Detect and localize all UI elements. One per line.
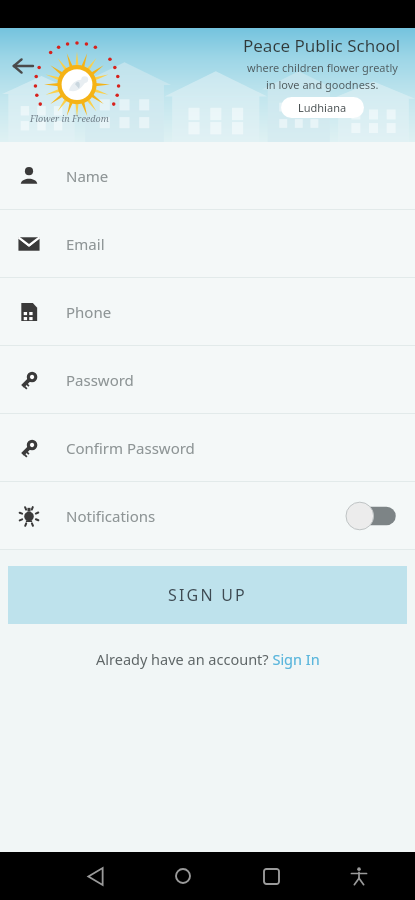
staticText: Peace Public School bbox=[243, 34, 401, 57]
staticText: Ludhiana bbox=[298, 100, 347, 115]
button[interactable]: Back bbox=[4, 48, 40, 84]
staticText: Notifications bbox=[66, 506, 156, 526]
button[interactable]: Recent apps bbox=[249, 854, 293, 898]
staticText: Confirm Password bbox=[66, 438, 195, 458]
staticText: Flower in Freedom bbox=[30, 112, 109, 124]
staticText: where children flower greatly bbox=[247, 60, 398, 75]
button[interactable]: Ludhiana bbox=[281, 97, 364, 118]
staticText: Phone bbox=[66, 302, 112, 322]
button[interactable]: Accessibility bbox=[337, 854, 381, 898]
staticText: SIGN UP bbox=[168, 584, 247, 606]
button[interactable]: Toggle notifications bbox=[345, 501, 399, 531]
button[interactable]: Home bbox=[161, 854, 205, 898]
staticText: Already have an account? Sign In bbox=[96, 649, 320, 669]
button[interactable]: Notifications bbox=[0, 482, 415, 550]
button[interactable]: Phone bbox=[0, 278, 415, 346]
staticText: in love and goodness. bbox=[266, 77, 379, 92]
button[interactable]: Confirm Password bbox=[0, 414, 415, 482]
staticText: Email bbox=[66, 234, 105, 254]
button[interactable]: Password bbox=[0, 346, 415, 414]
button[interactable]: Back bbox=[73, 854, 117, 898]
staticText: Name bbox=[66, 166, 109, 186]
button[interactable]: Name bbox=[0, 142, 415, 210]
button[interactable]: Email bbox=[0, 210, 415, 278]
staticText: Password bbox=[66, 370, 134, 390]
button[interactable]: Already have an account? Sign In bbox=[0, 642, 415, 676]
button[interactable]: SIGN UP bbox=[8, 566, 407, 624]
